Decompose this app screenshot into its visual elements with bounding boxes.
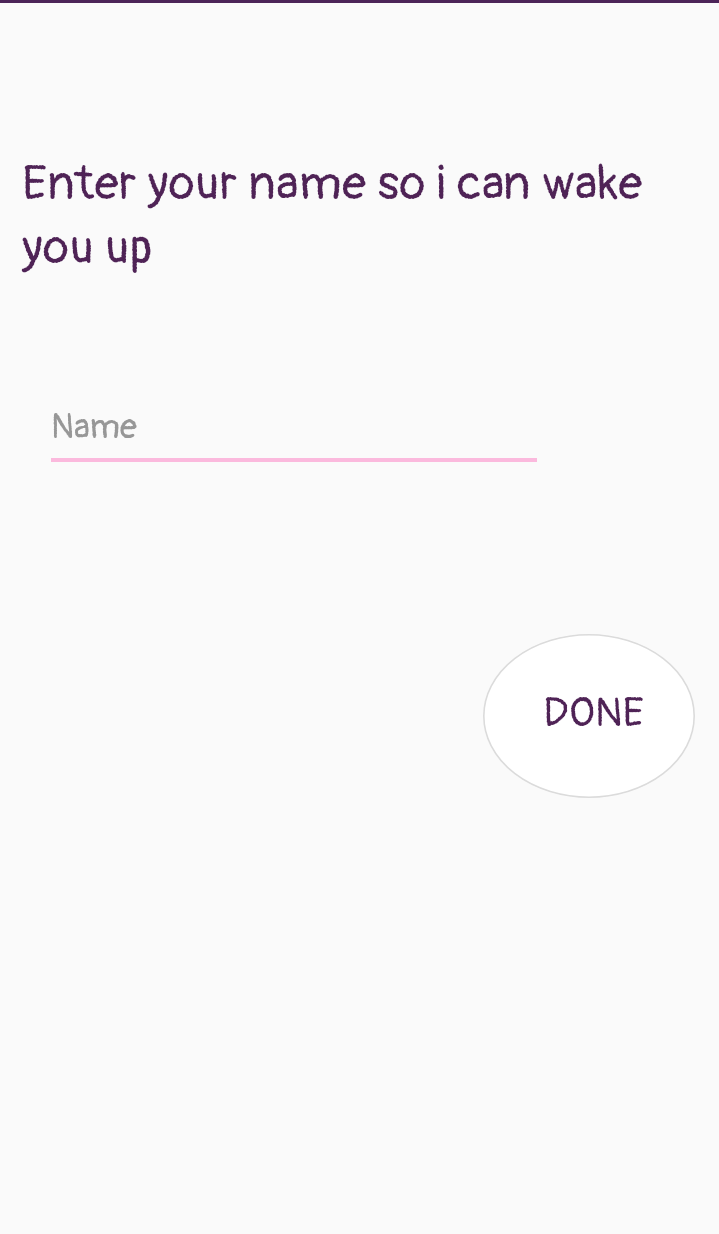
button[interactable]: Name input field [51, 398, 537, 462]
button[interactable]: DONE [483, 634, 695, 798]
staticText: DONE [543, 688, 644, 739]
staticText: Enter your name so i can wake you up [22, 154, 719, 278]
staticText: Name [51, 406, 137, 448]
